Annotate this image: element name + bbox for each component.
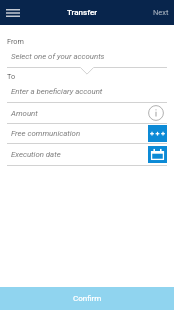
button[interactable]: Open navigation menu: [0, 0, 25, 25]
staticText: Execution date: [11, 150, 61, 159]
button[interactable]: Free communication: [0, 124, 174, 144]
button[interactable]: Next: [145, 0, 174, 25]
staticText: Amount: [11, 109, 38, 118]
staticText: Transfer: [67, 8, 98, 17]
staticText: To: [7, 72, 16, 81]
button[interactable]: Free communication options: [148, 125, 167, 142]
staticText: Next: [153, 8, 169, 17]
staticText: From: [7, 37, 24, 46]
button[interactable]: Confirm: [0, 287, 174, 310]
staticText: Enter a beneficiary account: [11, 87, 103, 96]
staticText: Confirm: [73, 294, 102, 303]
button[interactable]: Choose execution date: [148, 146, 167, 163]
button[interactable]: Execution date: [0, 144, 174, 166]
staticText: Select one of your accounts: [11, 52, 105, 61]
button[interactable]: Information: [148, 105, 164, 121]
staticText: Free communication: [11, 129, 81, 138]
button[interactable]: To: [0, 68, 174, 103]
button[interactable]: From: [0, 33, 174, 68]
button[interactable]: Amount: [0, 103, 174, 124]
